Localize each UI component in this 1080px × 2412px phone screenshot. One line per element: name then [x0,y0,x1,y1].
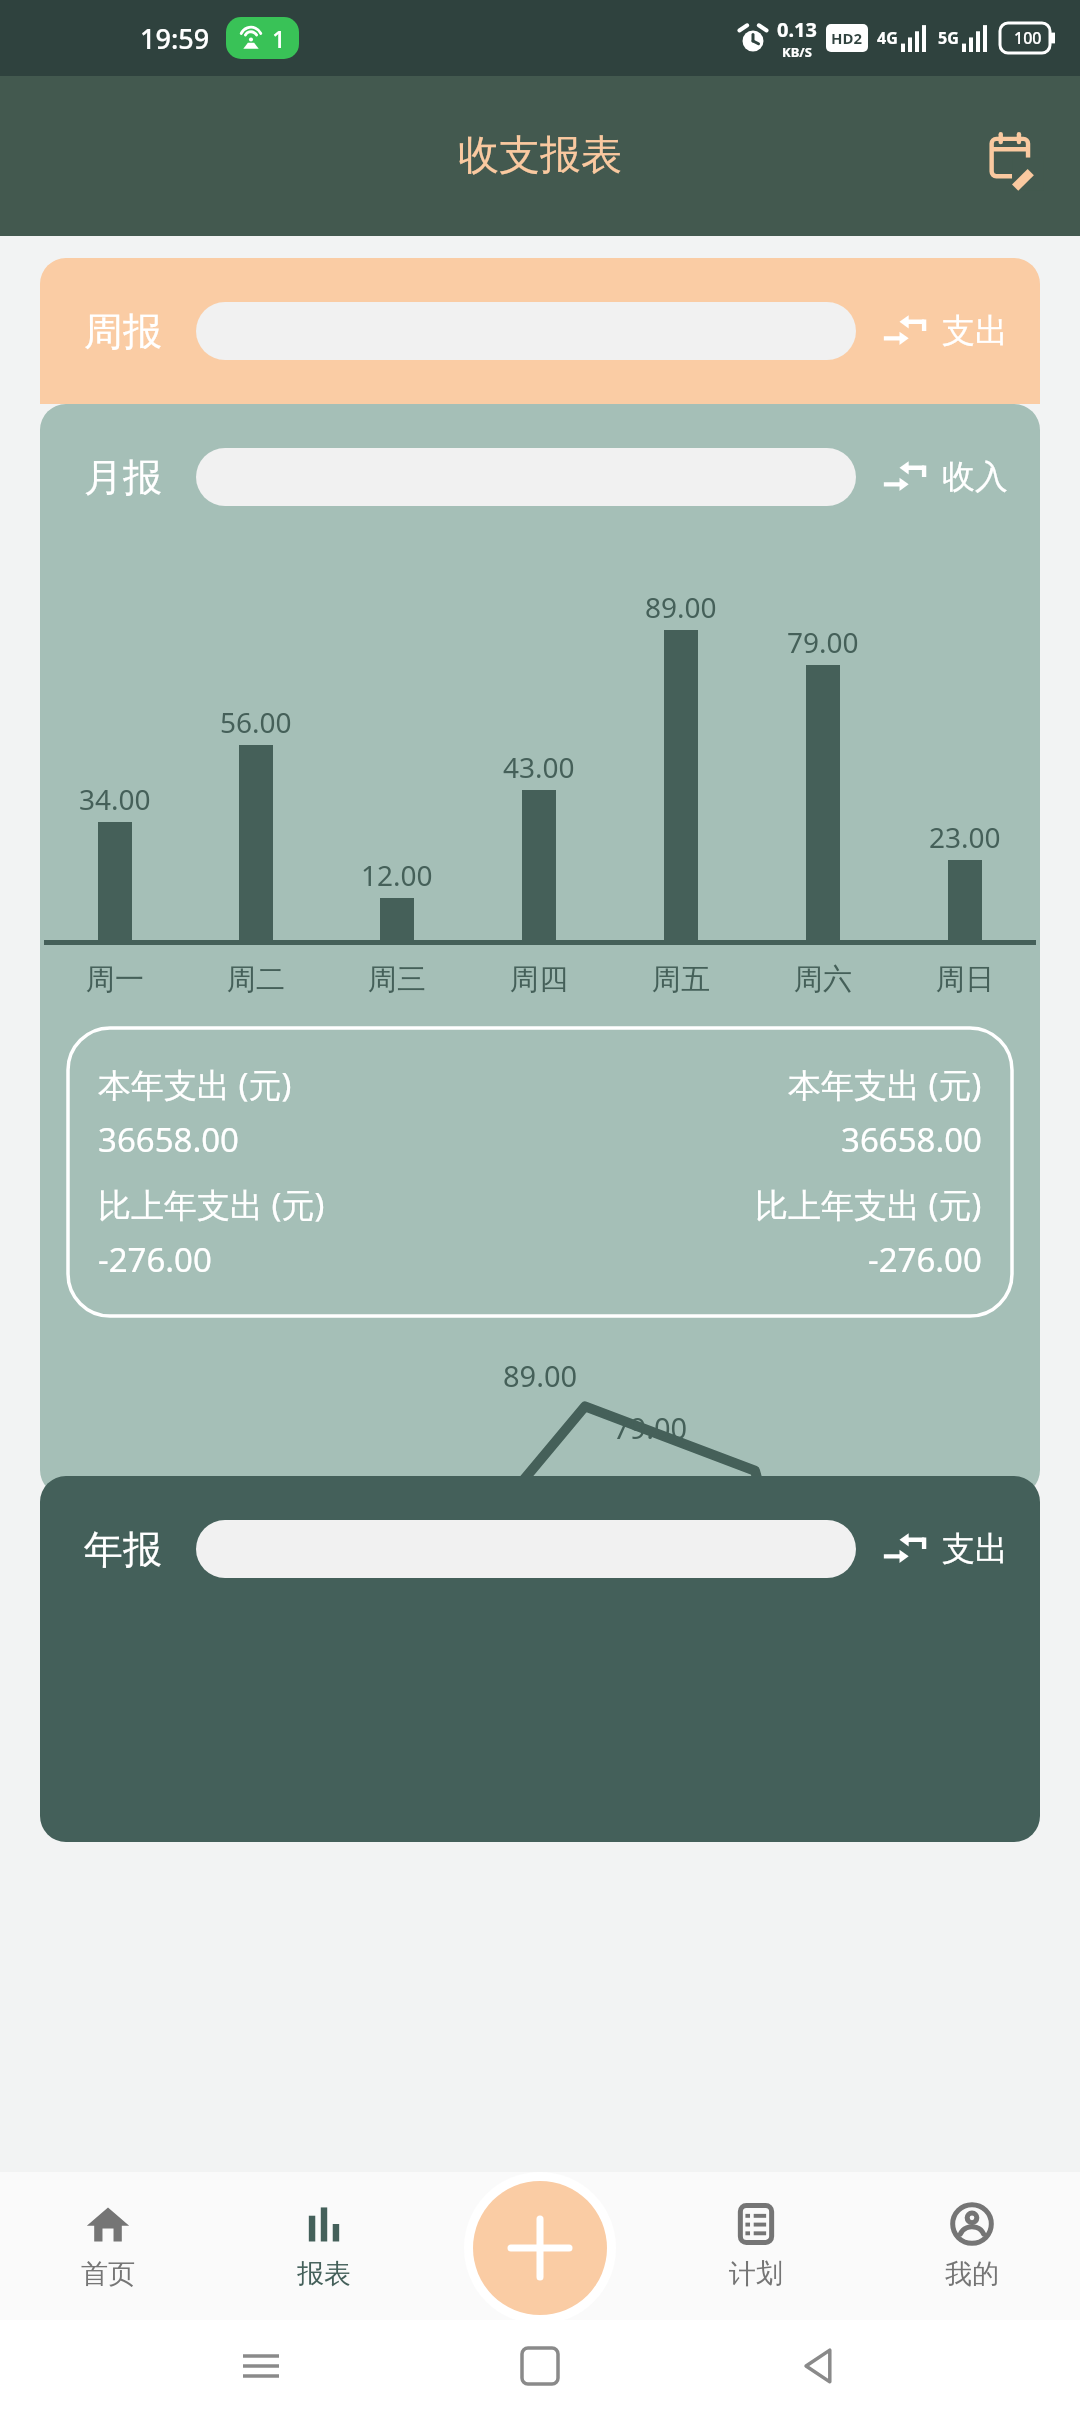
staticText: 收入 [942,456,1008,498]
staticText: 首页 [81,2257,135,2291]
staticText: 计划 [729,2257,783,2291]
staticText: 1 [272,22,286,55]
staticText: -276.00 [98,1237,212,1282]
staticText: 36658.00 [98,1117,239,1162]
button[interactable]: Add record [473,2181,607,2315]
staticText: 4G [877,27,898,49]
staticText: 79.00 [787,623,859,661]
staticText: -276.00 [868,1237,982,1282]
staticText: 89.00 [645,588,717,626]
button[interactable]: 报表 [216,2172,432,2320]
button[interactable]: 我的 [864,2172,1080,2320]
staticText: 36658.00 [841,1117,982,1162]
button[interactable]: 首页 [0,2172,216,2320]
staticText: 本年支出 (元) [788,1062,982,1107]
staticText: 12.00 [361,856,433,894]
staticText: 我的 [945,2257,999,2291]
staticText: 本年支出 (元) [98,1062,292,1107]
button[interactable]: 周报 [40,258,1040,404]
staticText: 周日 [936,961,994,998]
button[interactable]: 月报 [40,404,1040,550]
button[interactable]: 计划 [648,2172,864,2320]
staticText: 23.00 [929,818,1001,856]
staticText: 月报 [84,453,162,502]
button[interactable]: Select period [196,1520,856,1578]
button[interactable]: Edit calendar [978,120,1050,192]
staticText: 19:59 [140,20,210,57]
staticText: 79.00 [613,1408,688,1447]
button[interactable]: Select period [196,448,856,506]
staticText: 报表 [297,2257,351,2291]
staticText: 支出 [942,310,1008,352]
staticText: HD2 [831,28,863,48]
staticText: 34.00 [79,780,151,818]
staticText: 周四 [510,961,568,998]
staticText: 比上年支出 (元) [98,1182,325,1227]
staticText: 比上年支出 (元) [755,1182,982,1227]
staticText: 年报 [84,1525,162,1574]
staticText: 周六 [794,961,852,998]
staticText: 收支报表 [458,130,622,182]
staticText: 0.13 [777,16,817,43]
staticText: 5G [938,27,959,49]
button[interactable]: Select period [196,302,856,360]
staticText: 100 [1014,27,1042,49]
staticText: 支出 [942,1528,1008,1570]
staticText: 周一 [86,961,144,998]
staticText: 周报 [84,307,162,356]
staticText: 43.00 [503,748,575,786]
staticText: 周五 [652,961,710,998]
staticText: KB/S [782,43,812,61]
button[interactable]: 年报 [40,1476,1040,1622]
staticText: 89.00 [503,1356,578,1395]
staticText: 56.00 [220,703,292,741]
staticText: 周三 [368,961,426,998]
staticText: 周二 [227,961,285,998]
